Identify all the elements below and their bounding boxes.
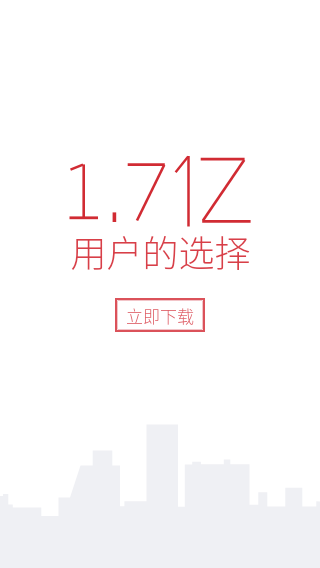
staticText: 用户的选择 — [70, 225, 251, 277]
staticText: 立即下载 — [126, 303, 194, 328]
button[interactable]: 立即下载 — [117, 300, 203, 330]
